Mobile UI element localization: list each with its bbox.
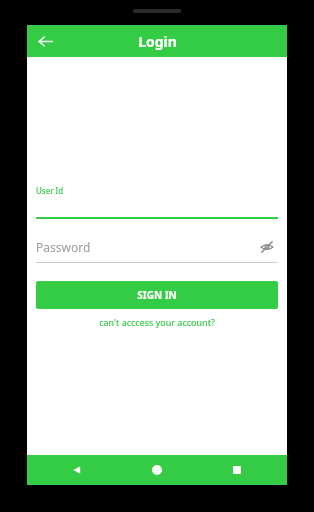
staticText: can't acccess your account? <box>99 316 215 328</box>
button[interactable]: Back <box>31 27 59 55</box>
staticText: Password <box>36 239 256 255</box>
button[interactable]: User Id <box>36 185 278 219</box>
staticText: User Id <box>36 185 64 196</box>
button[interactable]: Back <box>64 457 90 483</box>
button[interactable]: Password <box>36 236 278 263</box>
button[interactable]: can't acccess your account? <box>36 316 278 328</box>
button[interactable]: Show password <box>256 236 278 258</box>
button[interactable]: Recent apps <box>224 457 250 483</box>
button[interactable]: SIGN IN <box>36 281 278 309</box>
staticText: SIGN IN <box>137 288 177 302</box>
staticText: Login <box>138 32 177 51</box>
button[interactable]: Home <box>144 457 170 483</box>
